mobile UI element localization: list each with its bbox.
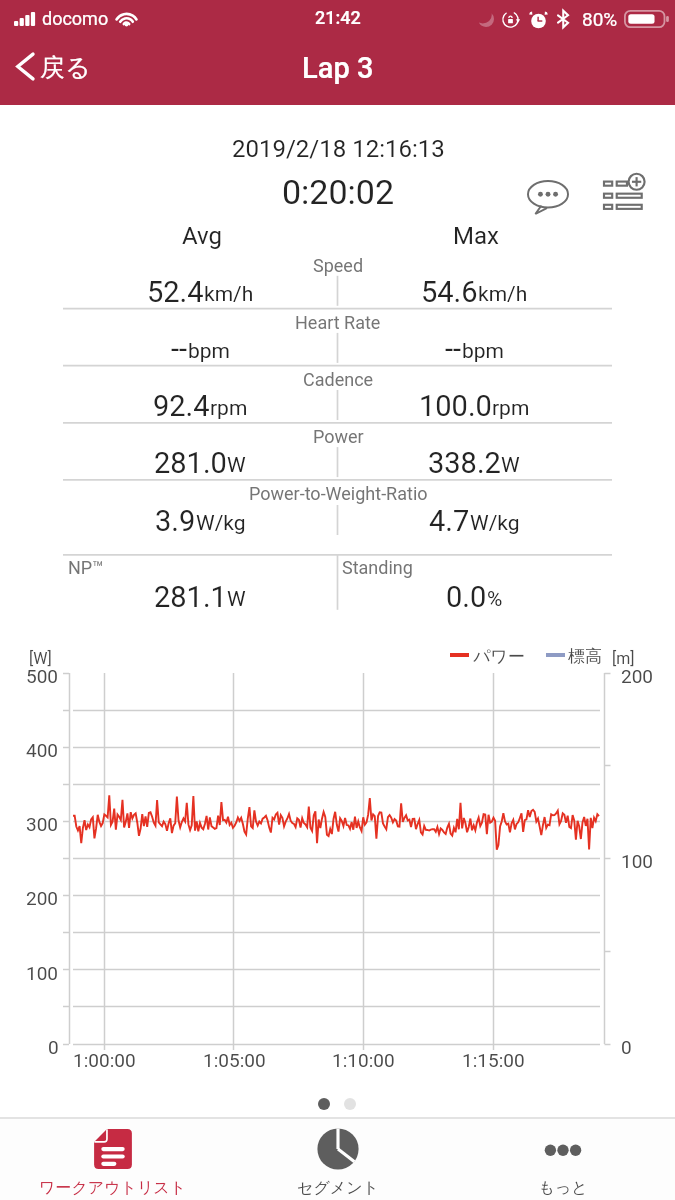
- staticText: km/h: [204, 282, 254, 307]
- staticText: Heart Rate: [295, 312, 381, 333]
- staticText: Standing: [342, 557, 413, 578]
- staticText: W: [227, 587, 246, 612]
- staticText: 4.7: [429, 504, 470, 538]
- staticText: 281.1: [154, 580, 227, 614]
- staticText: 0: [621, 1036, 632, 1058]
- staticText: NP™: [68, 557, 104, 578]
- staticText: パワー: [473, 646, 525, 667]
- staticText: 80%: [582, 8, 618, 30]
- staticText: 0:20:02: [282, 172, 395, 212]
- staticText: 52.4: [147, 275, 204, 309]
- staticText: docomo: [42, 8, 109, 29]
- staticText: 54.6: [421, 275, 478, 309]
- staticText: bpm: [462, 339, 504, 364]
- staticText: 100.0: [419, 389, 492, 423]
- staticText: 戻る: [40, 52, 91, 83]
- staticText: 1:05:00: [203, 1049, 266, 1071]
- staticText: 500: [26, 665, 59, 687]
- staticText: rpm: [492, 396, 530, 421]
- staticText: W: [501, 453, 520, 478]
- staticText: 1:15:00: [462, 1049, 525, 1071]
- staticText: 3.9: [155, 504, 196, 538]
- staticText: Avg: [182, 222, 223, 250]
- staticText: Power: [313, 426, 364, 447]
- staticText: 338.2: [428, 446, 501, 480]
- staticText: 標高: [568, 646, 602, 667]
- button[interactable]: Add to workout list: [598, 166, 651, 219]
- staticText: %: [487, 587, 503, 612]
- staticText: W/kg: [470, 511, 520, 536]
- staticText: 2019/2/18 12:16:13: [232, 135, 445, 163]
- button[interactable]: もっと: [450, 1119, 675, 1200]
- staticText: W: [227, 453, 246, 478]
- button[interactable]: セグメント: [225, 1119, 450, 1200]
- staticText: bpm: [188, 339, 230, 364]
- staticText: 100: [26, 962, 59, 984]
- staticText: 100: [621, 850, 654, 872]
- staticText: [m]: [612, 649, 635, 668]
- staticText: ワークアウトリスト: [39, 1178, 186, 1198]
- staticText: もっと: [538, 1178, 588, 1198]
- staticText: 1:10:00: [332, 1049, 395, 1071]
- staticText: 281.0: [154, 446, 227, 480]
- staticText: Lap 3: [302, 51, 374, 85]
- staticText: 300: [26, 813, 59, 835]
- staticText: [W]: [29, 649, 52, 668]
- button[interactable]: 戻る: [0, 47, 109, 90]
- staticText: 21:42: [315, 7, 361, 28]
- staticText: セグメント: [297, 1178, 379, 1198]
- staticText: Cadence: [303, 369, 374, 390]
- staticText: Max: [453, 222, 499, 250]
- staticText: Power-to-Weight-Ratio: [249, 483, 428, 504]
- staticText: 1:00:00: [73, 1049, 136, 1071]
- staticText: 92.4: [153, 389, 210, 423]
- button[interactable]: Comments: [521, 170, 574, 223]
- staticText: 400: [26, 739, 59, 761]
- staticText: 0: [48, 1036, 59, 1058]
- staticText: --: [171, 332, 188, 366]
- staticText: 0.0: [446, 580, 487, 614]
- staticText: 200: [26, 887, 59, 909]
- staticText: km/h: [478, 282, 528, 307]
- staticText: W/kg: [196, 511, 246, 536]
- staticText: 200: [621, 665, 654, 687]
- staticText: Speed: [313, 255, 364, 276]
- staticText: --: [445, 332, 462, 366]
- staticText: rpm: [210, 396, 248, 421]
- button[interactable]: ワークアウトリスト: [0, 1119, 225, 1200]
